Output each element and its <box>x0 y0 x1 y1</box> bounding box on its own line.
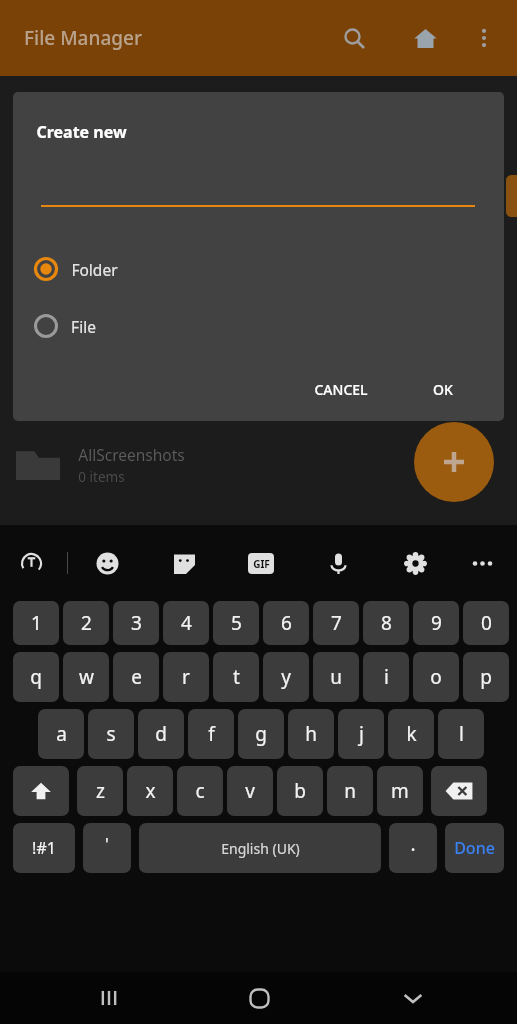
button[interactable]: q <box>13 652 59 702</box>
staticText: n <box>344 778 356 804</box>
button[interactable]: n <box>327 766 373 816</box>
button[interactable]: Shift <box>13 766 69 816</box>
button[interactable]: z <box>77 766 123 816</box>
staticText: f <box>208 721 215 747</box>
button[interactable]: AllScreenshots <box>0 432 517 498</box>
button[interactable]: f <box>188 709 234 759</box>
button[interactable]: 4 <box>163 601 209 645</box>
staticText: u <box>330 664 342 690</box>
button[interactable]: File <box>33 304 273 348</box>
button[interactable]: x <box>127 766 173 816</box>
button[interactable]: Apostrophe <box>83 823 131 873</box>
button[interactable]: 5 <box>213 601 259 645</box>
button[interactable]: 2 <box>63 601 109 645</box>
button[interactable]: e <box>113 652 159 702</box>
button[interactable]: Recents <box>85 974 133 1022</box>
staticText: . <box>410 831 416 857</box>
staticText: b <box>294 778 306 804</box>
button[interactable]: l <box>438 709 484 759</box>
button[interactable]: k <box>388 709 434 759</box>
staticText: s <box>106 721 116 747</box>
button[interactable]: d <box>138 709 184 759</box>
button[interactable]: y <box>263 652 309 702</box>
staticText: l <box>459 721 464 747</box>
staticText: p <box>480 664 492 690</box>
button[interactable]: g <box>238 709 284 759</box>
staticText: 3 <box>131 610 142 636</box>
button[interactable]: 0 <box>463 601 509 645</box>
staticText: 0 items <box>78 468 125 486</box>
button[interactable]: b <box>277 766 323 816</box>
button[interactable]: Done <box>445 823 504 873</box>
button[interactable]: i <box>363 652 409 702</box>
staticText: 5 <box>231 610 242 636</box>
staticText: k <box>406 721 417 747</box>
button[interactable]: Search <box>332 16 376 60</box>
button[interactable]: 7 <box>313 601 359 645</box>
staticText: q <box>30 664 42 690</box>
staticText: Folder <box>71 259 118 280</box>
button[interactable]: Settings <box>398 546 432 580</box>
button[interactable]: v <box>227 766 273 816</box>
button[interactable]: m <box>377 766 423 816</box>
button[interactable]: p <box>463 652 509 702</box>
staticText: CANCEL <box>314 380 368 399</box>
staticText: g <box>255 721 267 747</box>
button[interactable]: 3 <box>113 601 159 645</box>
staticText: AllScreenshots <box>78 444 185 465</box>
staticText: 8 <box>381 610 392 636</box>
button[interactable]: Create new <box>414 422 494 502</box>
staticText: Done <box>454 837 495 859</box>
button[interactable]: o <box>413 652 459 702</box>
button[interactable]: Symbols <box>13 823 75 873</box>
staticText: 1 <box>31 610 42 636</box>
button[interactable]: CANCEL <box>303 369 379 409</box>
staticText: t <box>233 664 240 690</box>
button[interactable]: GIF <box>244 546 278 580</box>
staticText: 6 <box>281 610 292 636</box>
button[interactable]: s <box>88 709 134 759</box>
staticText: o <box>430 664 442 690</box>
button[interactable]: j <box>338 709 384 759</box>
staticText: File Manager <box>24 25 142 51</box>
button[interactable]: More <box>465 546 499 580</box>
button[interactable]: h <box>288 709 334 759</box>
button[interactable]: Emoji <box>90 546 124 580</box>
button[interactable]: Space, English (UK) <box>139 823 381 873</box>
button[interactable]: c <box>177 766 223 816</box>
button[interactable]: u <box>313 652 359 702</box>
staticText: d <box>155 721 167 747</box>
staticText: 7 <box>331 610 342 636</box>
button[interactable]: t <box>213 652 259 702</box>
button[interactable]: OK <box>420 369 466 409</box>
staticText: ' <box>105 832 109 855</box>
staticText: Create new <box>36 121 127 143</box>
staticText: h <box>305 721 317 747</box>
button[interactable]: Home <box>403 16 447 60</box>
staticText: English (UK) <box>221 839 300 858</box>
button[interactable]: Period <box>389 823 437 873</box>
button[interactable]: 9 <box>413 601 459 645</box>
staticText: a <box>56 721 67 747</box>
button[interactable]: Hide keyboard <box>389 974 437 1022</box>
staticText: y <box>281 664 291 690</box>
button[interactable]: Home <box>235 974 283 1022</box>
staticText: File <box>71 316 96 337</box>
staticText: r <box>182 664 190 690</box>
button[interactable]: Backspace <box>431 766 487 816</box>
button[interactable]: More options <box>462 16 506 60</box>
button[interactable]: Stickers <box>167 546 201 580</box>
staticText: m <box>391 778 409 804</box>
staticText: w <box>79 664 94 690</box>
button[interactable]: r <box>163 652 209 702</box>
staticText: !#1 <box>32 837 56 859</box>
staticText: c <box>195 778 205 804</box>
button[interactable]: Folder <box>33 247 273 291</box>
button[interactable]: 6 <box>263 601 309 645</box>
button[interactable]: w <box>63 652 109 702</box>
button[interactable]: Voice input <box>321 546 355 580</box>
button[interactable]: 8 <box>363 601 409 645</box>
button[interactable]: Translate <box>14 546 48 580</box>
button[interactable]: 1 <box>13 601 59 645</box>
button[interactable]: a <box>38 709 84 759</box>
